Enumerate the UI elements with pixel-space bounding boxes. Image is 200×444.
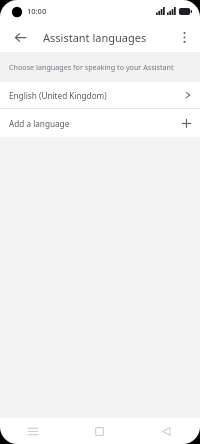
staticText: English (United Kingdom) xyxy=(9,90,185,101)
button[interactable]: Back xyxy=(133,418,200,444)
button[interactable]: More options xyxy=(172,25,196,49)
button[interactable]: Recent apps xyxy=(0,418,66,444)
staticText: 10:00 xyxy=(27,6,47,16)
staticText: Add a language xyxy=(9,118,181,129)
button[interactable]: Add a language xyxy=(0,109,200,137)
staticText: Assistant languages xyxy=(43,30,147,45)
button[interactable]: Home xyxy=(66,418,133,444)
staticText: Choose languages for speaking to your As… xyxy=(9,62,174,72)
button[interactable]: English (United Kingdom) xyxy=(0,82,200,108)
button[interactable]: Back xyxy=(8,25,32,49)
